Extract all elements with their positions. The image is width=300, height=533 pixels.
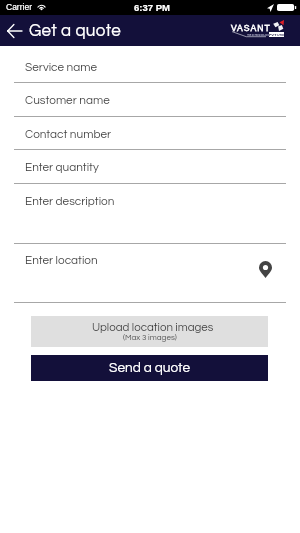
button[interactable]: Send a quote [31, 355, 268, 381]
staticText: (Max 3 images) [123, 333, 177, 341]
staticText: 6:37 PM [134, 2, 170, 13]
button[interactable]: Back [2, 19, 26, 43]
staticText: Customer name [25, 94, 110, 106]
staticText: PVT LTD [269, 32, 284, 37]
staticText: VASANT [231, 23, 271, 33]
button[interactable]: Upload location images [31, 316, 268, 347]
staticText: Send a quote [109, 361, 190, 375]
button[interactable]: Pick location [252, 256, 278, 282]
staticText: Enter description [25, 195, 115, 207]
staticText: Enter quantity [25, 161, 99, 173]
staticText: Upload location images [92, 322, 214, 334]
staticText: TECHNOLOGIES [247, 32, 277, 37]
staticText: Enter location [25, 254, 98, 266]
staticText: Service name [25, 61, 98, 73]
staticText: Get a quote [29, 22, 122, 40]
staticText: Contact number [25, 128, 112, 140]
staticText: Carrier [6, 2, 32, 11]
